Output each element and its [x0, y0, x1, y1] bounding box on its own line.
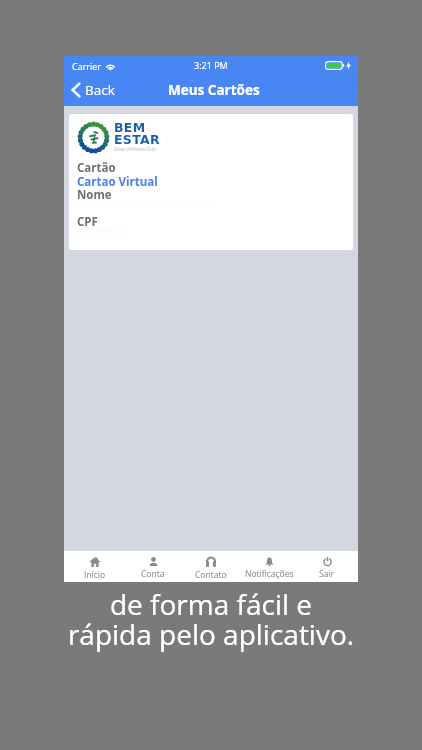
staticText: CPF: [77, 214, 98, 230]
staticText: Contato: [195, 569, 227, 581]
staticText: Meus Cartões: [168, 81, 260, 99]
staticText: ESTAR: [114, 132, 160, 147]
staticText: Back: [85, 81, 115, 99]
staticText: Disus Wellness Club: [114, 146, 156, 152]
staticText: Notificações: [245, 568, 294, 580]
button[interactable]: Back: [64, 78, 119, 102]
staticText: Conta: [141, 568, 165, 580]
button[interactable]: Logout: [298, 551, 356, 582]
staticText: Sair: [319, 568, 335, 580]
button[interactable]: Contact: [182, 551, 240, 582]
staticText: Cartao Virtual: [77, 174, 158, 190]
button[interactable]: Account: [124, 551, 182, 582]
staticText: Cartão: [77, 160, 116, 176]
staticText: Carrier: [72, 60, 102, 72]
staticText: Início: [84, 569, 106, 581]
staticText: 3:21 PM: [194, 59, 228, 71]
button[interactable]: Home: [66, 551, 124, 582]
staticText: BEM: [114, 120, 146, 135]
button[interactable]: BEM: [69, 114, 353, 250]
staticText: Nome: [77, 187, 112, 203]
button[interactable]: Notifications: [240, 551, 298, 582]
staticText: de forma fácil e rápida pelo aplicativo.: [0, 585, 422, 653]
